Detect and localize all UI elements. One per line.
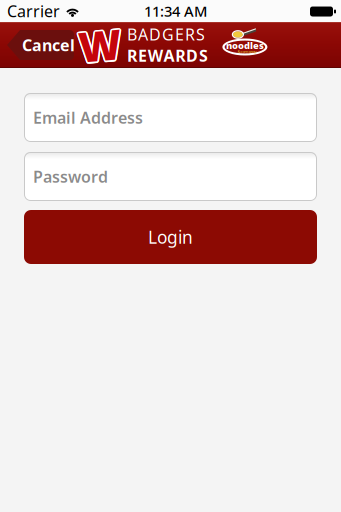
staticText: W — [79, 16, 122, 71]
button[interactable]: Login — [24, 210, 317, 264]
button[interactable]: Email Address — [24, 93, 317, 142]
button[interactable]: Password — [24, 152, 317, 201]
staticText: REWARDS — [127, 45, 208, 66]
staticText: W — [79, 16, 122, 71]
staticText: W — [80, 18, 123, 72]
staticText: W — [77, 17, 120, 72]
staticText: W — [77, 18, 120, 73]
staticText: W — [79, 19, 122, 74]
staticText: W — [78, 19, 121, 74]
staticText: W — [78, 16, 121, 71]
button[interactable]: Cancel — [7, 30, 74, 60]
staticText: Login — [148, 225, 193, 248]
staticText: W — [80, 17, 123, 72]
staticText: Email Address — [33, 107, 143, 128]
staticText: &company — [237, 49, 256, 54]
staticText: W — [77, 18, 120, 72]
staticText: noodles — [226, 39, 264, 52]
staticText: BADGERS — [127, 24, 205, 45]
staticText: W — [80, 18, 123, 73]
staticText: Cancel — [22, 34, 75, 56]
staticText: 11:34 AM — [144, 1, 207, 21]
staticText: Password — [33, 166, 108, 187]
staticText: Carrier — [7, 0, 60, 22]
staticText: W — [79, 18, 122, 72]
staticText: W — [79, 19, 122, 74]
